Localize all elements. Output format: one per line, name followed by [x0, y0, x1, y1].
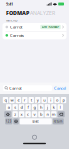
staticText: x [21, 112, 23, 117]
staticText: Carrot [10, 24, 22, 30]
staticText: i [50, 97, 51, 103]
button[interactable]: k [51, 104, 57, 110]
button[interactable]: p [61, 97, 66, 103]
button[interactable]: c [25, 111, 31, 117]
button[interactable]: Carrots [2, 31, 66, 39]
button[interactable]: d [19, 104, 24, 110]
staticText: b [40, 112, 42, 117]
staticText: f [28, 104, 29, 110]
button[interactable]: e [16, 97, 21, 103]
button[interactable]: Delete [58, 111, 65, 117]
staticText: u [43, 97, 45, 103]
staticText: c [27, 112, 29, 117]
button[interactable]: l [58, 104, 63, 110]
button[interactable]: n [45, 111, 50, 117]
staticText: v [33, 112, 35, 117]
button[interactable]: a [6, 104, 11, 110]
staticText: g [33, 104, 35, 110]
button[interactable]: z [12, 111, 18, 117]
button[interactable]: g [32, 104, 37, 110]
button[interactable]: f [25, 104, 31, 110]
button[interactable]: b [38, 111, 44, 117]
staticText: r [24, 97, 26, 103]
button[interactable]: r [22, 97, 27, 103]
button[interactable]: return [53, 118, 64, 124]
button[interactable]: s [12, 104, 18, 110]
button[interactable]: Carrot [3, 85, 52, 91]
button[interactable]: x [19, 111, 24, 117]
button[interactable]: o [54, 97, 60, 103]
staticText: return [54, 120, 63, 123]
button[interactable]: m [51, 111, 57, 117]
button[interactable]: t [29, 97, 34, 103]
staticText: FODMAP [6, 9, 29, 17]
button[interactable]: Carrot [2, 23, 66, 31]
staticText: a [8, 104, 10, 110]
button[interactable]: y [35, 97, 40, 103]
button[interactable]: v [32, 111, 37, 117]
button[interactable]: Dictate [32, 135, 37, 140]
staticText: e [17, 97, 19, 103]
button[interactable]: u [41, 97, 47, 103]
button[interactable]: i [48, 97, 53, 103]
staticText: LOW FODMAP [41, 25, 59, 29]
staticText: 9:41 [6, 1, 13, 7]
button[interactable]: Next keyboard [13, 118, 19, 124]
button[interactable]: h [38, 104, 44, 110]
staticText: z [14, 112, 16, 117]
staticText: ANALYZER [29, 9, 55, 17]
button[interactable]: Shift [4, 111, 11, 117]
button[interactable]: w [9, 97, 15, 103]
staticText: Carrots [10, 33, 24, 38]
staticText: h [40, 104, 42, 110]
staticText: m [52, 112, 56, 117]
staticText: j [47, 104, 48, 110]
staticText: t [31, 97, 32, 103]
staticText: k [53, 104, 55, 110]
staticText: 123 [6, 120, 12, 123]
staticText: q [4, 97, 6, 103]
staticText: Cancel [54, 85, 66, 91]
button[interactable]: j [45, 104, 50, 110]
staticText: w [10, 97, 13, 103]
button[interactable]: 123 [5, 118, 12, 124]
staticText: p [62, 97, 64, 103]
staticText: d [21, 104, 23, 110]
staticText: s [14, 104, 16, 110]
button[interactable]: q [3, 97, 8, 103]
staticText: l [60, 104, 61, 110]
button[interactable]: Cancel [52, 85, 66, 91]
staticText: MATCHES [6, 19, 17, 22]
staticText: n [46, 112, 48, 117]
staticText: Carrot [9, 85, 21, 91]
staticText: space [32, 120, 39, 123]
staticText: o [56, 97, 58, 103]
staticText: y [37, 97, 39, 103]
button[interactable]: space [20, 118, 52, 124]
